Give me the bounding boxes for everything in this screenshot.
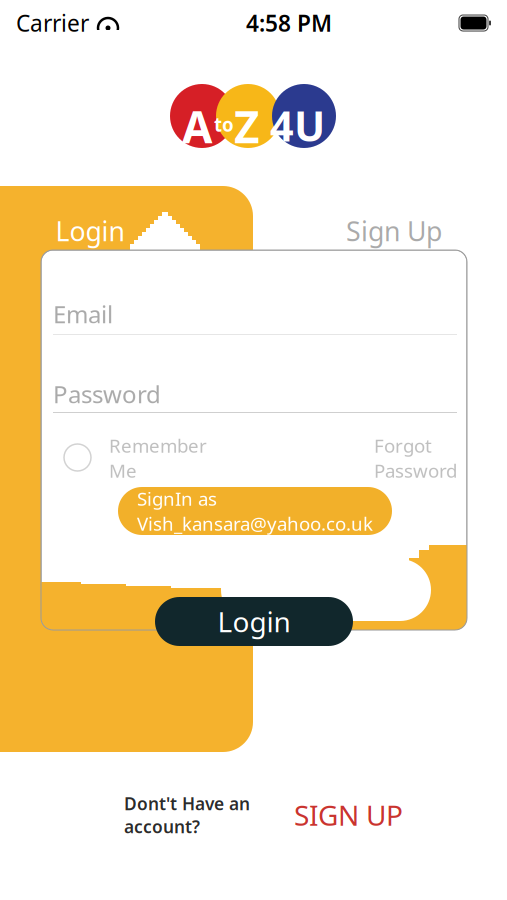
staticText: Carrier (16, 8, 89, 38)
staticText: Z (234, 97, 259, 155)
staticText: Login (55, 213, 124, 249)
button[interactable]: Forgot Password (337, 446, 457, 470)
staticText: Forgot Password (374, 433, 457, 483)
button[interactable]: Login (155, 597, 353, 646)
staticText: Sign Up (346, 213, 442, 249)
staticText: Dont't Have an account? (124, 792, 250, 838)
button[interactable]: Login (35, 214, 145, 248)
staticText: Remember Me (109, 433, 207, 483)
staticText: SignIn as Vish_kansara@yahoo.co.uk (137, 486, 373, 536)
staticText: A (182, 97, 212, 155)
staticText: Password (53, 378, 161, 410)
staticText: SIGN UP (294, 796, 403, 834)
staticText: 4U (270, 98, 325, 153)
button[interactable]: SignIn as Vish_kansara@yahoo.co.uk (118, 487, 392, 535)
button[interactable]: Remember Me (109, 446, 229, 470)
staticText: Login (217, 603, 290, 640)
button[interactable]: SIGN UP (294, 796, 403, 834)
staticText: Email (53, 298, 113, 330)
button[interactable]: Remember Me (64, 444, 91, 471)
staticText: to (214, 112, 234, 137)
button[interactable]: Sign Up (339, 214, 449, 248)
staticText: 4:58 PM (246, 8, 332, 38)
